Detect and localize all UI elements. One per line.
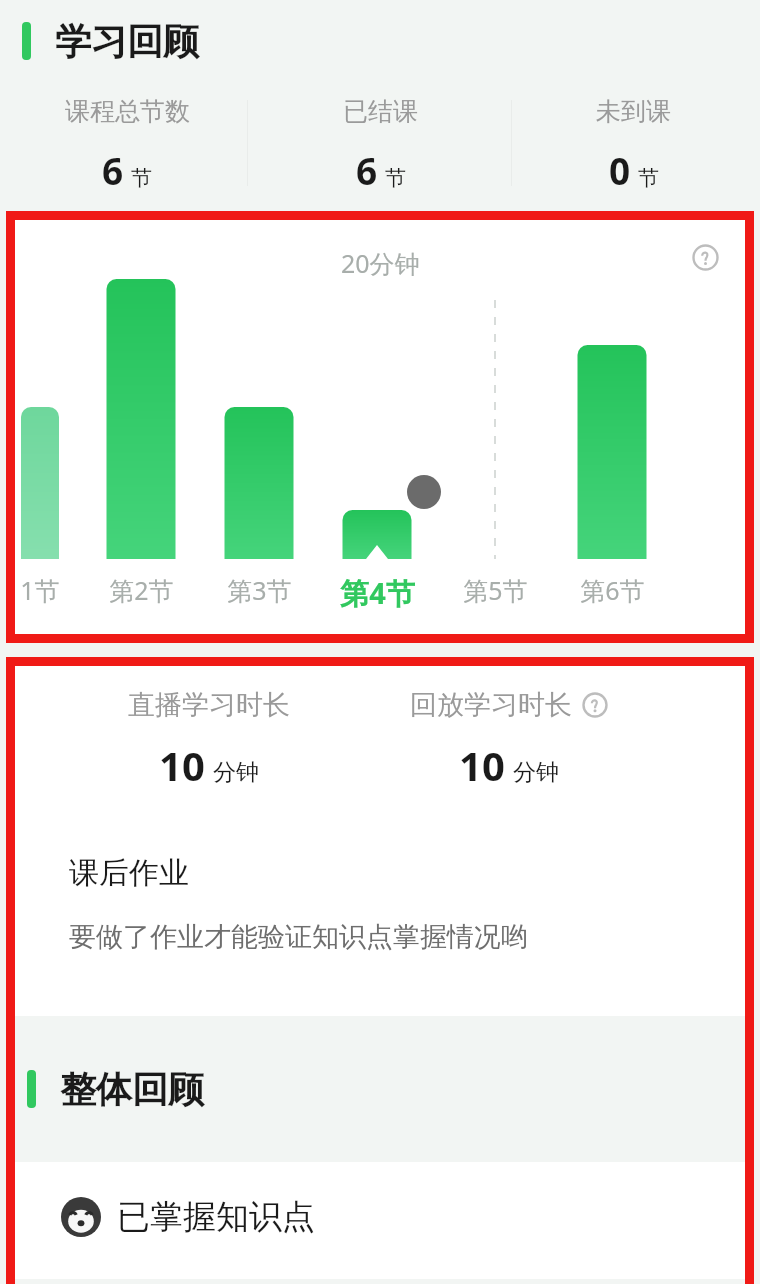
staticText: 6 — [356, 145, 378, 195]
button[interactable]: 1节 — [0, 573, 87, 607]
staticText: 6 — [102, 145, 124, 195]
staticText: 10 — [159, 738, 205, 792]
staticText: 回放学习时长 — [410, 688, 572, 722]
button[interactable]: 直播学习时长 — [59, 688, 359, 792]
button[interactable]: 课程总节数 — [0, 82, 254, 195]
staticText: 节 — [131, 165, 152, 191]
staticText: 分钟 — [213, 758, 259, 787]
staticText: 直播学习时长 — [128, 688, 290, 722]
staticText: 节 — [385, 165, 406, 191]
button[interactable]: 已掌握知识点 — [13, 1162, 747, 1279]
staticText: 第3节 — [227, 573, 292, 607]
staticText: 整体回顾 — [60, 1067, 204, 1112]
staticText: 20分钟 — [341, 246, 420, 280]
staticText: 要做了作业才能验证知识点掌握情况哟 — [69, 920, 528, 954]
button[interactable]: 帮助 — [582, 692, 608, 718]
staticText: 第6节 — [580, 573, 645, 607]
staticText: 1节 — [20, 573, 60, 607]
button[interactable]: 回放学习时长 — [359, 688, 659, 792]
button[interactable]: 未到课 — [507, 82, 760, 195]
staticText: 第5节 — [463, 573, 528, 607]
staticText: 分钟 — [513, 758, 559, 787]
button[interactable]: 已结课 — [254, 82, 507, 195]
staticText: 课后作业 — [69, 854, 189, 892]
button[interactable]: 图表说明 — [692, 244, 719, 271]
staticText: 已结课 — [343, 96, 418, 127]
button[interactable]: 第2节 — [94, 573, 188, 607]
staticText: 第2节 — [109, 573, 174, 607]
staticText: 课程总节数 — [65, 96, 190, 127]
button[interactable]: 第4节 — [330, 573, 424, 613]
button[interactable]: 直播学习时长 — [13, 664, 747, 1016]
staticText: 10 — [459, 738, 505, 792]
staticText: 已掌握知识点 — [117, 1196, 315, 1238]
button[interactable]: 第3节 — [212, 573, 306, 607]
button[interactable]: 第6节 — [565, 573, 659, 607]
staticText: 未到课 — [596, 96, 671, 127]
button[interactable]: 第5节 — [448, 573, 542, 607]
staticText: 学习回顾 — [55, 19, 199, 64]
button[interactable]: 20分钟 — [13, 218, 747, 636]
staticText: 第4节 — [340, 573, 415, 613]
staticText: 节 — [638, 165, 659, 191]
staticText: 0 — [609, 145, 631, 195]
